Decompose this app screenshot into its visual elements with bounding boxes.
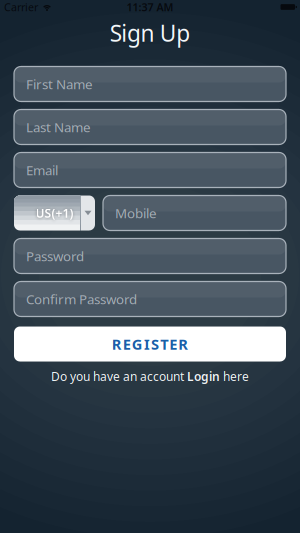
staticText: First Name (26, 75, 93, 93)
button[interactable]: Email (14, 152, 286, 187)
button[interactable]: Password (14, 238, 286, 273)
button[interactable]: First Name (14, 66, 286, 101)
staticText: Carrier (4, 0, 38, 14)
staticText: Do you have an account Login here (51, 368, 249, 384)
button[interactable]: US(+1) (14, 195, 95, 230)
button[interactable]: Last Name (14, 109, 286, 144)
staticText: Email (26, 161, 58, 179)
button[interactable]: Do you have an account Login here (51, 368, 249, 384)
button[interactable]: Confirm Password (14, 281, 286, 316)
staticText: Confirm Password (26, 290, 137, 308)
staticText: 11:37 AM (126, 0, 173, 14)
button[interactable]: Mobile (103, 195, 286, 230)
button[interactable]: REGISTER (14, 326, 286, 361)
staticText: US(+1) (35, 205, 73, 221)
staticText: Sign Up (110, 18, 190, 48)
staticText: REGISTER (112, 334, 188, 354)
staticText: Password (26, 247, 84, 265)
staticText: Mobile (115, 204, 157, 222)
staticText: Last Name (26, 118, 91, 136)
